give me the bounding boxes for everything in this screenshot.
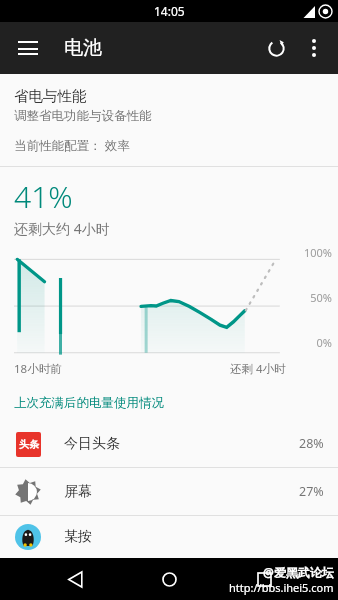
button[interactable]: Refresh [256,28,296,68]
staticText: 当前性能配置： 效率 [14,137,130,154]
button[interactable]: Back [55,559,95,599]
staticText: 0% [316,335,332,350]
staticText: 18小时前 [14,361,62,377]
staticText: 上次充满后的电量使用情况 [14,395,164,411]
staticText: 屏幕 [64,483,92,501]
button[interactable]: Recent apps [244,559,284,599]
staticText: http://bbs.ihei5.com [229,580,334,595]
staticText: 电池 [64,36,102,60]
button[interactable]: Menu [10,30,46,66]
button[interactable]: 41% [0,167,338,387]
button[interactable]: 头条 [0,420,338,467]
button[interactable]: More options [296,30,332,66]
staticText: 省电与性能 [14,87,87,105]
staticText: 28% [299,435,324,452]
staticText: 今日头条 [64,435,120,453]
staticText: 100% [303,245,332,260]
button[interactable]: 省电与性能 [0,74,338,166]
staticText: 调整省电功能与设备性能 [14,108,152,124]
button[interactable]: 上次充满后的电量使用情况 [0,387,338,420]
button[interactable]: 某按 [0,516,338,558]
button[interactable]: Home [149,559,189,599]
button[interactable]: 屏幕 [0,468,338,515]
staticText: 50% [310,290,332,305]
staticText: @爱黑武论坛 [263,564,334,580]
staticText: 还剩大约 4小时 [14,219,110,238]
staticText: 还剩 4小时 [230,361,286,377]
staticText: 14:05 [154,3,185,19]
staticText: 头条 [19,438,39,451]
staticText: 27% [299,483,324,500]
staticText: 41% [14,176,73,217]
staticText: 某按 [64,528,92,546]
